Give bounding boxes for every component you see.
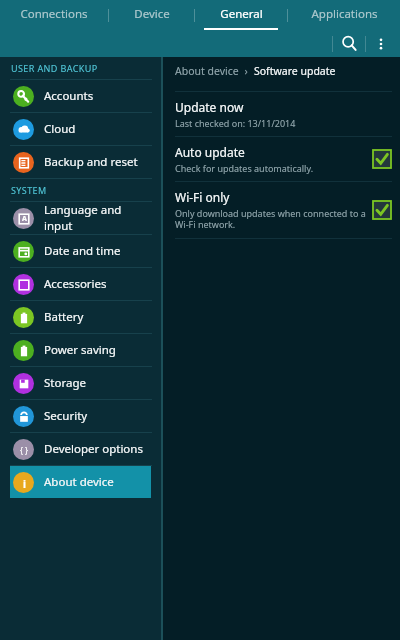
staticText: Date and time [44, 243, 121, 259]
staticText: Only download updates when connected to … [175, 207, 366, 231]
button[interactable]: Accounts [10, 80, 151, 112]
staticText: Power saving [44, 342, 116, 358]
staticText: Last checked on: 13/11/2014 [175, 117, 296, 129]
button[interactable]: Backup and reset [10, 146, 151, 178]
button[interactable]: Wi-Fi only [163, 182, 400, 238]
staticText: { } [20, 445, 29, 456]
staticText: Wi-Fi only [175, 189, 230, 205]
staticText: Storage [44, 375, 86, 391]
button[interactable]: Storage [10, 367, 151, 399]
button[interactable]: A [10, 202, 151, 234]
button[interactable]: Auto update [163, 137, 400, 181]
staticText: About device [44, 474, 114, 490]
staticText: Cloud [44, 121, 76, 137]
staticText: Check for updates automatically. [175, 162, 314, 174]
staticText: Accessories [44, 276, 107, 292]
staticText: About device [175, 64, 239, 78]
staticText: Auto update [175, 144, 245, 160]
staticText: Software update [254, 64, 336, 78]
staticText: Accounts [44, 88, 94, 104]
button[interactable]: i [10, 466, 151, 498]
button[interactable]: General [195, 0, 287, 30]
staticText: Security [44, 408, 88, 424]
button[interactable]: Accessories [10, 268, 151, 300]
button[interactable]: Security [10, 400, 151, 432]
staticText: i [23, 477, 26, 489]
button[interactable]: Device [109, 0, 194, 30]
staticText: USER AND BACKUP [11, 62, 98, 74]
staticText: Language and input [44, 202, 151, 234]
staticText: Device [134, 6, 170, 22]
staticText: Developer options [44, 441, 143, 457]
button[interactable]: Connections [0, 0, 108, 30]
button[interactable]: Update now [163, 92, 400, 136]
staticText: › [239, 64, 254, 78]
button[interactable]: Battery [10, 301, 151, 333]
staticText: General [220, 6, 263, 22]
button[interactable]: Applications [288, 0, 400, 30]
staticText: Applications [311, 6, 378, 22]
staticText: Connections [20, 6, 88, 22]
button[interactable]: Power saving [10, 334, 151, 366]
staticText: Backup and reset [44, 154, 138, 170]
button[interactable]: { } [10, 433, 151, 465]
button[interactable]: Date and time [10, 235, 151, 267]
staticText: Battery [44, 309, 84, 325]
button[interactable]: Search [333, 30, 365, 57]
button[interactable]: More options [366, 30, 396, 57]
staticText: Update now [175, 99, 244, 115]
button[interactable]: Cloud [10, 113, 151, 145]
button[interactable]: Toggle [373, 150, 391, 168]
staticText: SYSTEM [11, 184, 47, 196]
button[interactable]: Toggle [373, 201, 391, 219]
staticText: A [22, 214, 27, 224]
